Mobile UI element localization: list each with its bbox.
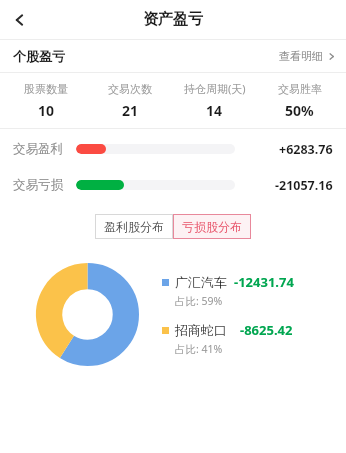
staticText: 交易次数 [108,82,152,96]
button[interactable]: Back [0,0,40,39]
staticText: 查看明细 [279,49,323,63]
staticText: 持仓周期(天) [184,81,246,96]
staticText: 资产盈亏 [143,10,203,29]
staticText: 广汇汽车 [175,274,227,290]
staticText: 盈利股分布 [104,219,164,234]
staticText: 亏损股分布 [182,219,242,234]
staticText: -8625.42 [240,321,293,339]
button[interactable]: 亏损股分布 [173,214,251,239]
staticText: 10 [38,101,55,120]
button[interactable]: 交易次数 [88,82,172,120]
button[interactable]: 股票数量 [4,82,88,120]
staticText: 50% [285,101,314,120]
staticText: -21057.16 [275,177,333,194]
staticText: 股票数量 [24,82,68,96]
staticText: 交易胜率 [278,82,322,96]
staticText: 个股盈亏 [13,48,65,64]
button[interactable]: 广汇汽车 [162,273,294,308]
staticText: +6283.76 [279,141,333,158]
staticText: -12431.74 [234,273,294,291]
staticText: 招商蛇口 [175,322,227,338]
staticText: 14 [206,101,223,120]
staticText: 交易盈利 [13,141,76,157]
staticText: 占比: 41% [175,342,223,356]
button[interactable]: 查看明细 [271,45,346,67]
button[interactable]: 盈利股分布 [95,214,173,239]
staticText: 占比: 59% [175,294,223,308]
staticText: 交易亏损 [13,177,76,193]
button[interactable]: 持仓周期(天) [172,81,257,120]
button[interactable]: 交易胜率 [257,82,342,120]
button[interactable]: 招商蛇口 [162,321,293,356]
staticText: 21 [122,101,139,120]
